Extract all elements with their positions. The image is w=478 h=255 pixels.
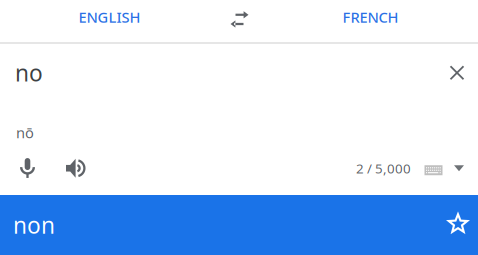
button[interactable]: Input options <box>446 150 472 186</box>
button[interactable]: Save translation <box>431 207 467 243</box>
staticText: nō <box>16 123 34 142</box>
staticText: ENGLISH <box>78 7 140 27</box>
button[interactable]: Clear text <box>435 61 465 91</box>
button[interactable]: FRENCH <box>259 0 478 42</box>
staticText: non <box>13 210 55 240</box>
button[interactable]: Voice input <box>6 150 49 186</box>
button[interactable]: Keyboard <box>411 150 446 186</box>
button[interactable]: ENGLISH <box>0 0 219 42</box>
staticText: 2 / 5,000 <box>356 159 411 177</box>
staticText: FRENCH <box>342 7 398 27</box>
button[interactable]: Swap languages <box>219 0 259 42</box>
staticText: no <box>15 58 43 88</box>
button[interactable]: Listen <box>49 150 92 186</box>
